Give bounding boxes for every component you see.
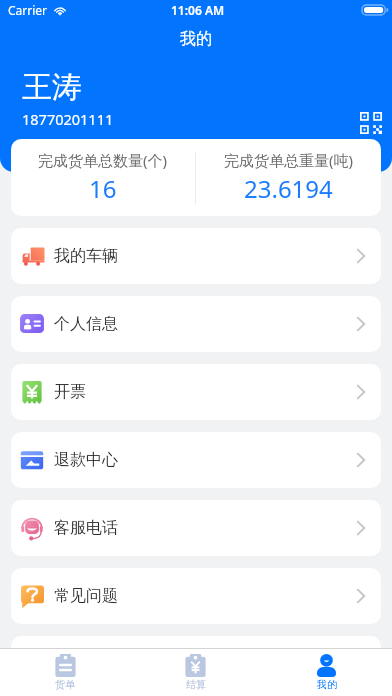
button[interactable]: 我的 — [261, 649, 392, 696]
staticText: 客服电话 — [54, 518, 118, 538]
staticText: 我的 — [317, 678, 337, 691]
staticText: 个人信息 — [54, 314, 118, 334]
staticText: 完成货单总数量(个) — [38, 150, 168, 170]
staticText: 设置 — [54, 654, 86, 674]
button[interactable]: 退款中心 — [11, 432, 381, 488]
staticText: 常见问题 — [54, 586, 118, 606]
staticText: 完成货单总重量(吨) — [224, 150, 354, 170]
staticText: 退款中心 — [54, 450, 118, 470]
staticText: 11:06 AM — [171, 2, 225, 18]
button[interactable]: 设置 — [11, 636, 381, 692]
button[interactable]: 开票 — [11, 364, 381, 420]
staticText: 结算 — [186, 678, 206, 691]
staticText: 16 — [89, 172, 117, 205]
staticText: 货单 — [55, 678, 75, 691]
staticText: 18770201111 — [22, 109, 114, 129]
button[interactable]: 个人信息 — [11, 296, 381, 352]
button[interactable]: 我的车辆 — [11, 228, 381, 284]
button[interactable]: 常见问题 — [11, 568, 381, 624]
staticText: 王涛 — [22, 68, 82, 106]
staticText: 开票 — [54, 382, 86, 402]
staticText: 我的 — [180, 29, 212, 49]
button[interactable]: 结算 — [130, 649, 261, 696]
staticText: 23.6194 — [244, 172, 333, 205]
staticText: 我的车辆 — [54, 246, 118, 266]
button[interactable]: 货单 — [0, 649, 130, 696]
staticText: Carrier — [8, 2, 48, 18]
button[interactable]: Scan QR code — [360, 112, 382, 134]
button[interactable]: 客服电话 — [11, 500, 381, 556]
